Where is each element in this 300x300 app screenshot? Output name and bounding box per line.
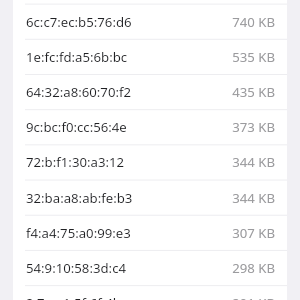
staticText: 298 KB bbox=[232, 259, 275, 277]
staticText: 1e:fc:fd:a5:6b:bc bbox=[26, 48, 128, 66]
button[interactable]: 2:7a:a1:5f:6f:4b bbox=[13, 286, 287, 300]
staticText: 740 KB bbox=[232, 13, 275, 31]
staticText: 32:ba:a8:ab:fe:b3 bbox=[26, 189, 133, 207]
staticText: 373 KB bbox=[232, 118, 275, 136]
staticText: 72:b:f1:30:a3:12 bbox=[26, 153, 125, 171]
staticText: 2:7a:a1:5f:6f:4b bbox=[26, 294, 121, 300]
button[interactable]: 32:ba:a8:ab:fe:b3 bbox=[13, 181, 287, 215]
button[interactable]: 9c:bc:f0:cc:56:4e bbox=[13, 110, 287, 144]
staticText: 6c:c7:ec:b5:76:d6 bbox=[26, 13, 132, 31]
staticText: 344 KB bbox=[232, 153, 275, 171]
button[interactable]: 54:9:10:58:3d:c4 bbox=[13, 251, 287, 285]
button[interactable]: 6c:c7:ec:b5:76:d6 bbox=[13, 5, 287, 39]
staticText: 291 KB bbox=[232, 294, 275, 300]
staticText: 307 KB bbox=[232, 224, 275, 242]
staticText: 435 KB bbox=[232, 83, 275, 101]
button[interactable]: f4:a4:75:a0:99:e3 bbox=[13, 216, 287, 250]
staticText: 9c:bc:f0:cc:56:4e bbox=[26, 118, 127, 136]
staticText: f4:a4:75:a0:99:e3 bbox=[26, 224, 131, 242]
button[interactable]: 64:32:a8:60:70:f2 bbox=[13, 75, 287, 109]
staticText: 64:32:a8:60:70:f2 bbox=[26, 83, 132, 101]
staticText: 535 KB bbox=[232, 48, 275, 66]
staticText: 54:9:10:58:3d:c4 bbox=[26, 259, 127, 277]
button[interactable]: 72:b:f1:30:a3:12 bbox=[13, 145, 287, 179]
staticText: 344 KB bbox=[232, 189, 275, 207]
button[interactable]: 1e:fc:fd:a5:6b:bc bbox=[13, 40, 287, 74]
